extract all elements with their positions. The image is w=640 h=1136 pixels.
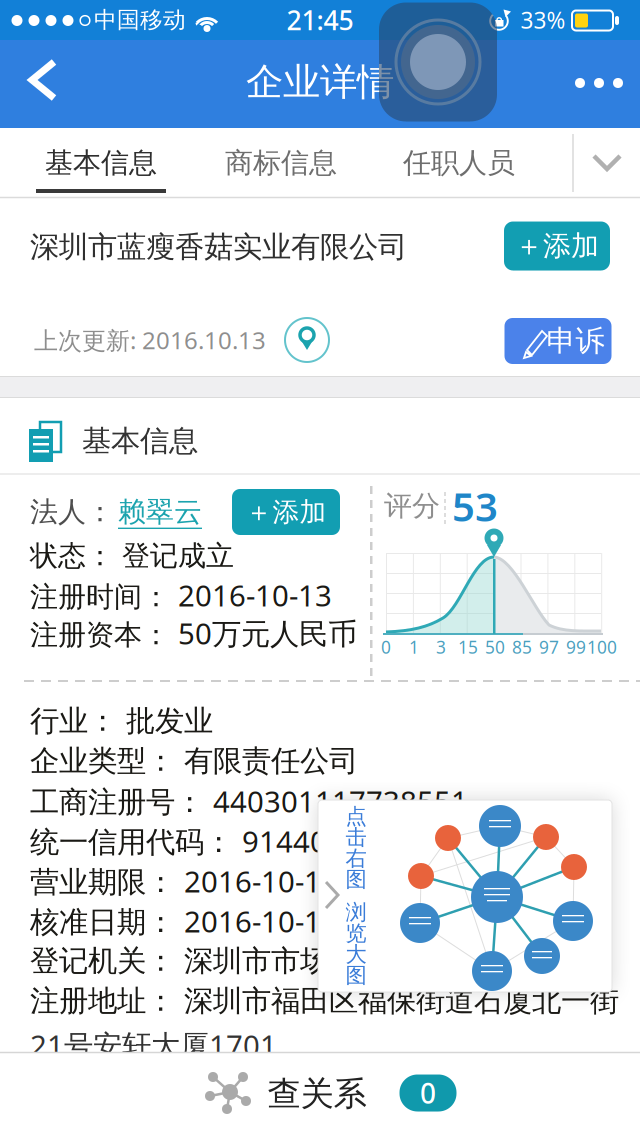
button[interactable]: 返回 [18, 60, 70, 104]
staticText: 33% [520, 5, 565, 35]
staticText: 企业类型： 有限责任公司 [30, 743, 358, 779]
staticText: 深圳市蓝瘦香菇实业有限公司 [30, 229, 407, 265]
staticText: 申诉 [546, 323, 604, 359]
button[interactable]: 展开更多栏目 [587, 128, 627, 198]
staticText: 1 [409, 635, 419, 658]
button[interactable]: AssistiveTouch [379, 2, 497, 121]
staticText: 营业期限： 2016-10-13 至 无固定期限 [30, 861, 529, 900]
staticText: 注册资本： 50万元人民币 [30, 613, 357, 652]
staticText: 商标信息 [225, 146, 337, 180]
button[interactable]: 浏览企业关系大图 [318, 800, 612, 992]
staticText: 注册时间： 2016-10-13 [30, 575, 332, 614]
button[interactable]: ＋添加 [504, 221, 610, 270]
staticText: 状态： 登记成立 [30, 539, 234, 573]
staticText: ＋添加 [515, 229, 599, 263]
staticText: 上次更新: 2016.10.13 [34, 324, 266, 356]
staticText: 注册地址： 深圳市福田区福保街道石厦北一街 [30, 983, 619, 1019]
staticText: 浏 [345, 899, 366, 926]
staticText: 图 [345, 866, 366, 893]
button[interactable]: ＋添加 [232, 489, 340, 535]
staticText: 53 [452, 479, 498, 532]
staticText: 21号安轩大厦1701 [30, 1025, 277, 1064]
staticText: 基本信息 [45, 146, 157, 180]
staticText: 3 [436, 635, 446, 658]
button[interactable]: 更多 [573, 62, 625, 104]
staticText: 查关系 [267, 1073, 366, 1114]
staticText: 97 [539, 635, 559, 658]
staticText: 击 [345, 824, 366, 851]
button[interactable]: 任职人员 [376, 128, 542, 198]
button[interactable]: 查看地址 [285, 318, 329, 362]
staticText: 15 [458, 635, 478, 658]
button[interactable]: 商标信息 [198, 128, 364, 198]
button[interactable]: 赖翠云 [110, 490, 210, 534]
staticText: 评分 [384, 489, 440, 523]
staticText: 统一信用代码： 91440300117738551K [30, 821, 549, 860]
staticText: 85 [512, 635, 532, 658]
staticText: 大 [345, 941, 366, 968]
staticText: 工商注册号： 440301117738551 [30, 781, 468, 820]
staticText: 赖翠云 [118, 495, 202, 529]
button[interactable]: 基本信息 [18, 128, 184, 198]
staticText: 100 [587, 635, 617, 658]
staticText: 基本信息 [82, 423, 198, 459]
staticText: 50 [485, 635, 505, 658]
staticText: 图 [345, 962, 366, 989]
button[interactable]: 申诉 [504, 318, 611, 364]
staticText: 99 [566, 635, 586, 658]
staticText: 中国移动 [94, 6, 186, 34]
staticText: 21:45 [286, 2, 353, 38]
staticText: 企业详情 [246, 59, 394, 105]
staticText: 右 [345, 845, 366, 872]
staticText: 登记机关： 深圳市市场监督管理局 [30, 943, 474, 979]
staticText: 行业： 批发业 [30, 703, 213, 739]
staticText: 0 [381, 635, 391, 658]
staticText: 核准日期： 2016-10-13 [30, 901, 338, 940]
staticText: ＋添加 [245, 496, 326, 528]
staticText: 0 [420, 1074, 436, 1112]
button[interactable]: 查关系 [0, 1052, 640, 1136]
staticText: 览 [345, 920, 366, 947]
staticText: 任职人员 [403, 146, 515, 180]
staticText: 法人： [30, 495, 114, 529]
staticText: 点 [345, 803, 366, 830]
